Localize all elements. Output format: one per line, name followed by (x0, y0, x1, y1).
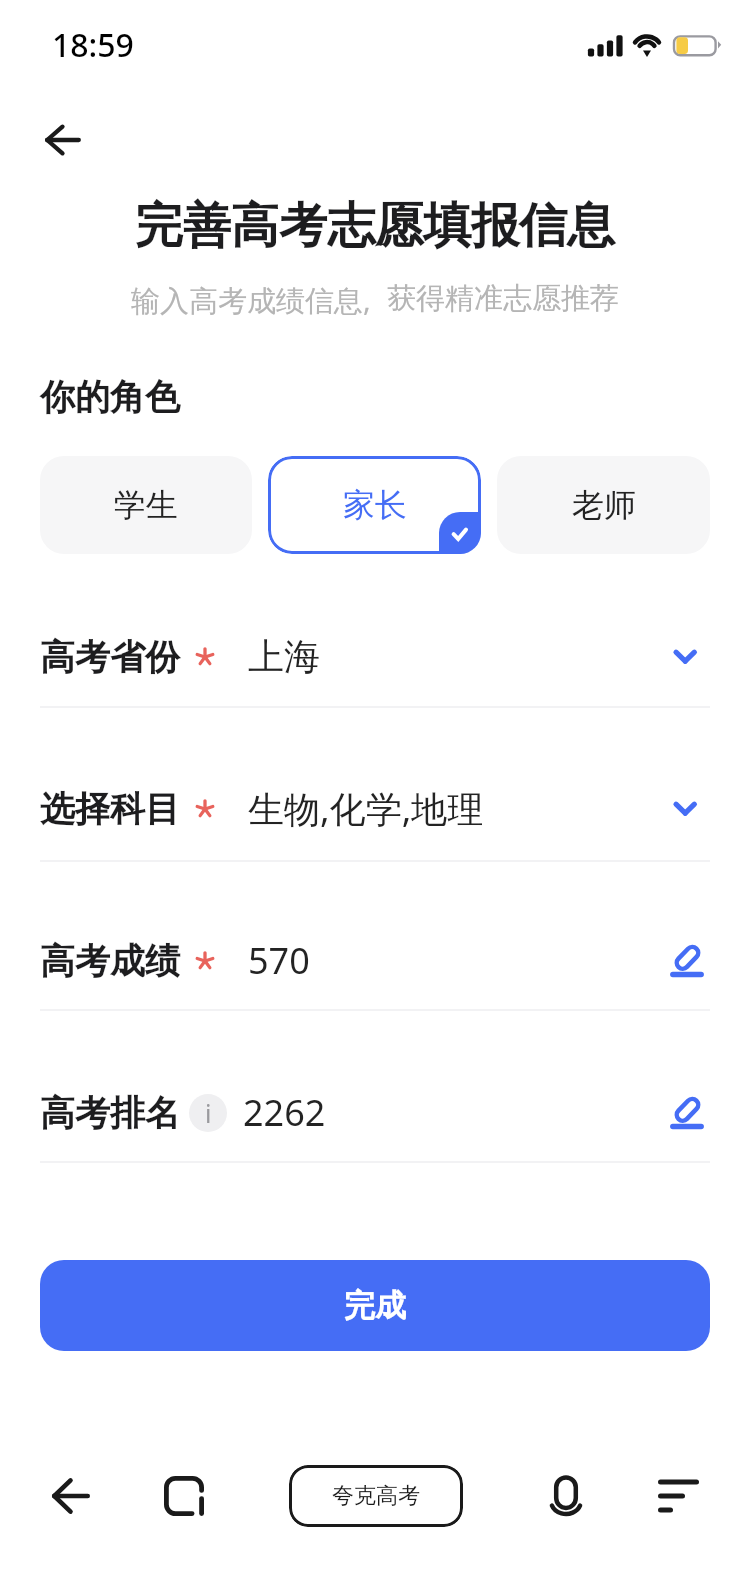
staticText: 家长 (343, 485, 407, 525)
button[interactable]: 夸克高考 (289, 1465, 463, 1527)
button[interactable]: 老师 (497, 456, 710, 554)
button[interactable]: 学生 (40, 456, 252, 554)
staticText: i (205, 1096, 212, 1130)
staticText: 高考成绩 (40, 939, 180, 983)
staticText: 完成 (344, 1286, 406, 1325)
staticText: 上海 (248, 634, 320, 679)
staticText: 夸克高考 (332, 1482, 420, 1510)
staticText: 570 (248, 936, 310, 985)
staticText: 高考排名 (40, 1091, 180, 1135)
staticText: 完善高考志愿填报信息 (0, 196, 750, 256)
button[interactable]: 完成 (40, 1260, 710, 1351)
button[interactable]: Back (35, 1460, 107, 1532)
staticText: 18:59 (52, 23, 134, 67)
staticText: 获得精准志愿推荐 (387, 280, 619, 317)
button[interactable]: 高考排名 (0, 1063, 750, 1162)
button[interactable]: Tabs (148, 1460, 220, 1532)
staticText: 生物,化学,地理 (248, 784, 484, 833)
button[interactable]: 高考省份 (0, 607, 750, 706)
button[interactable]: 家长 (268, 456, 481, 554)
staticText: 输入高考成绩信息, (131, 280, 371, 320)
staticText: 学生 (114, 485, 178, 525)
staticText: 选择科目 (40, 787, 180, 831)
staticText: 高考省份 (40, 635, 180, 679)
staticText: 老师 (572, 485, 636, 525)
button[interactable]: 选择科目 (0, 759, 750, 858)
button[interactable]: 高考成绩 (0, 911, 750, 1010)
staticText: 你的角色 (40, 375, 180, 419)
button[interactable]: Back (26, 106, 100, 174)
button[interactable]: Voice search (530, 1460, 602, 1532)
staticText: 2262 (243, 1088, 326, 1137)
button[interactable]: Menu (642, 1460, 714, 1532)
